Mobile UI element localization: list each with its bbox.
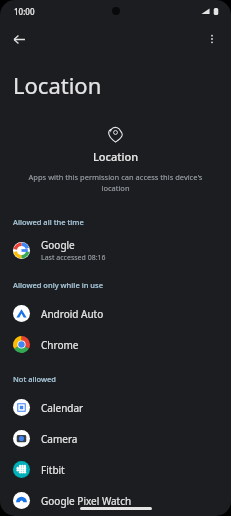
staticText: Location: [93, 149, 139, 164]
staticText: Allowed all the time: [13, 217, 84, 227]
button[interactable]: More options: [200, 27, 224, 51]
staticText: Calendar: [41, 401, 84, 415]
staticText: Android Auto: [41, 307, 104, 321]
button[interactable]: Fitbit: [0, 454, 231, 485]
button[interactable]: Calendar: [0, 392, 231, 423]
staticText: Fitbit: [41, 463, 65, 477]
staticText: Camera: [41, 432, 78, 446]
button[interactable]: Chrome: [0, 329, 231, 360]
button[interactable]: Android Auto: [0, 298, 231, 329]
staticText: Google: [41, 238, 75, 252]
button[interactable]: Google Pixel Watch: [0, 485, 231, 516]
staticText: Apps with this permission can access thi…: [26, 172, 205, 193]
staticText: Not allowed: [13, 374, 57, 384]
staticText: Allowed only while in use: [13, 280, 103, 290]
staticText: Chrome: [41, 338, 79, 352]
staticText: Location: [13, 70, 102, 100]
button[interactable]: Google: [0, 235, 231, 266]
staticText: Google Pixel Watch: [41, 494, 132, 508]
staticText: Last accessed 08:16: [41, 253, 106, 263]
staticText: 10:00: [14, 6, 35, 17]
button[interactable]: Back: [7, 27, 31, 51]
button[interactable]: Camera: [0, 423, 231, 454]
